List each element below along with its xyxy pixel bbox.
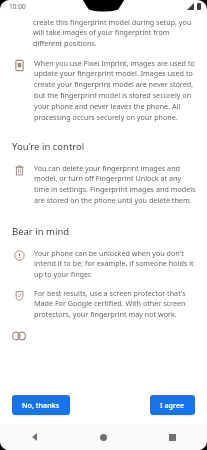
button[interactable]: Recents <box>138 424 207 450</box>
button[interactable]: Home <box>69 424 138 450</box>
staticText: create this fingerprint model during set… <box>33 17 197 48</box>
staticText: You're in control <box>12 140 85 153</box>
staticText: I agree <box>160 400 185 410</box>
staticText: You can delete your fingerprint images a… <box>34 163 197 205</box>
other: Link <box>11 328 27 344</box>
button[interactable]: I agree <box>150 395 195 415</box>
staticText: 10:00 <box>9 2 26 11</box>
staticText: Bear in mind <box>12 225 70 238</box>
staticText: For best results, use a screen protector… <box>34 288 197 319</box>
staticText: Your phone can be unlocked when you don'… <box>34 248 197 279</box>
button[interactable]: Back <box>0 424 69 450</box>
button[interactable]: No, thanks <box>12 395 70 415</box>
staticText: When you use Pixel Imprint, images are u… <box>34 58 197 122</box>
staticText: No, thanks <box>22 400 60 410</box>
